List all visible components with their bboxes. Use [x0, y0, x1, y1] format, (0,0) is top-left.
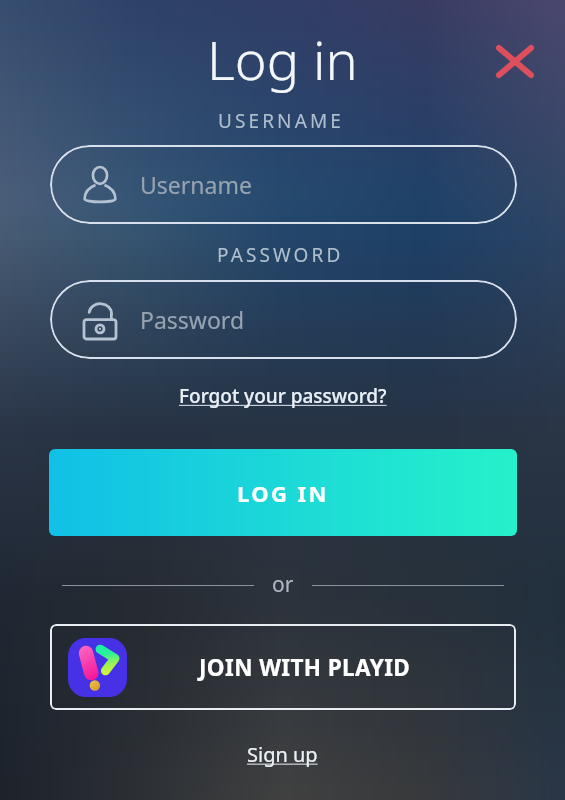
staticText: Username	[140, 169, 252, 200]
button[interactable]: Username	[50, 145, 517, 224]
button[interactable]: Forgot your password?	[171, 378, 395, 414]
staticText: Sign up	[247, 741, 318, 768]
staticText: LOG IN	[237, 478, 329, 508]
staticText: JOIN WITH PLAYID	[199, 652, 411, 683]
staticText: PASSWORD	[217, 242, 344, 268]
button[interactable]: Close	[490, 39, 539, 83]
button[interactable]: Password	[50, 280, 517, 359]
staticText: USERNAME	[218, 108, 344, 134]
button[interactable]: LOG IN	[49, 449, 517, 536]
staticText: Log in	[207, 22, 358, 96]
staticText: Password	[140, 304, 245, 335]
staticText: Forgot your password?	[179, 383, 387, 409]
staticText: or	[272, 570, 294, 599]
button[interactable]: JOIN WITH PLAYID	[50, 624, 516, 710]
button[interactable]: Sign up	[239, 736, 326, 773]
